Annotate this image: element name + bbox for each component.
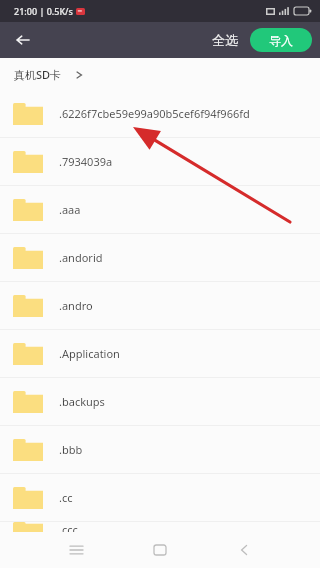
button[interactable]: .6226f7cbe59e99a90b5cef6f94f966fd	[0, 90, 320, 137]
staticText: .andorid	[59, 250, 103, 265]
button[interactable]: 全选	[206, 28, 244, 52]
button[interactable]: 导入	[250, 28, 312, 52]
staticText: .backups	[59, 394, 105, 409]
staticText: .Application	[59, 346, 120, 361]
button[interactable]: .ccc	[0, 522, 320, 532]
button[interactable]: .bbb	[0, 426, 320, 473]
staticText: .ccc	[59, 522, 78, 532]
button[interactable]: Home	[144, 534, 176, 566]
button[interactable]: Back	[228, 534, 260, 566]
button[interactable]: .andorid	[0, 234, 320, 281]
staticText: .6226f7cbe59e99a90b5cef6f94f966fd	[59, 106, 250, 121]
staticText: .7934039a	[59, 154, 113, 169]
button[interactable]: .backups	[0, 378, 320, 425]
staticText: .bbb	[59, 442, 83, 457]
staticText: 导入	[269, 33, 293, 48]
staticText: 21:00 | 0.5K/s	[14, 5, 73, 17]
staticText: .cc	[59, 490, 73, 505]
button[interactable]: 真机SD卡	[12, 63, 85, 86]
button[interactable]: Back	[6, 23, 40, 57]
button[interactable]: .Application	[0, 330, 320, 377]
button[interactable]: Menu	[60, 534, 92, 566]
button[interactable]: .cc	[0, 474, 320, 521]
button[interactable]: .7934039a	[0, 138, 320, 185]
button[interactable]: .aaa	[0, 186, 320, 233]
staticText: .aaa	[59, 202, 81, 217]
staticText: .andro	[59, 298, 93, 313]
staticText: 全选	[212, 32, 238, 48]
button[interactable]: .andro	[0, 282, 320, 329]
staticText: 真机SD卡	[14, 67, 62, 82]
